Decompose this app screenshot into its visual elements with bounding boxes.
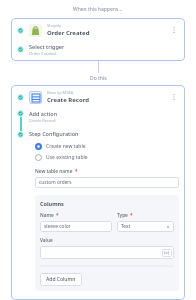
staticText: Text [121, 223, 131, 230]
staticText: Step Configuration [29, 130, 79, 137]
button[interactable]: More options [169, 25, 179, 35]
staticText: Add action [29, 110, 58, 117]
staticText: * [75, 168, 78, 175]
button[interactable]: Step complete [11, 18, 185, 61]
button[interactable]: Insert variable [162, 249, 172, 257]
staticText: Value [40, 237, 53, 244]
other: Step complete [17, 110, 24, 117]
other: Step complete [17, 131, 24, 138]
staticText: New table name [35, 168, 73, 175]
staticText: Type [117, 212, 128, 219]
staticText: When this happens... [73, 6, 123, 13]
button[interactable]: Add Column [40, 273, 82, 286]
staticText: {x} [164, 250, 170, 256]
staticText: Create Record [47, 96, 90, 104]
staticText: sleeve color [44, 223, 71, 230]
staticText: Create new table [46, 143, 86, 150]
staticText: Shopify [47, 23, 61, 28]
button[interactable]: Create new table [35, 143, 86, 150]
staticText: Base by MYAA [47, 90, 74, 95]
button[interactable]: Use existing table [35, 154, 88, 161]
staticText: Do this [90, 75, 107, 82]
staticText: * [130, 212, 133, 219]
staticText: Columns [40, 200, 64, 207]
staticText: Select trigger [29, 43, 65, 50]
staticText: custom orders [39, 179, 72, 186]
other: Step complete [17, 94, 24, 101]
staticText: Create Record [29, 118, 56, 123]
button[interactable]: Insert variable [40, 246, 174, 259]
staticText: Order Created [29, 51, 56, 56]
button[interactable]: More options [169, 92, 179, 102]
button[interactable]: sleeve color [40, 221, 112, 232]
staticText: Order Created [47, 29, 90, 37]
staticText: Name [40, 212, 54, 219]
staticText: Use existing table [46, 154, 88, 161]
staticText: * [56, 212, 59, 219]
staticText: Add Column [46, 276, 76, 283]
button[interactable]: Text [117, 221, 174, 232]
other: Step complete [17, 46, 24, 53]
other: Step complete [17, 27, 24, 34]
button[interactable]: custom orders [35, 177, 179, 188]
